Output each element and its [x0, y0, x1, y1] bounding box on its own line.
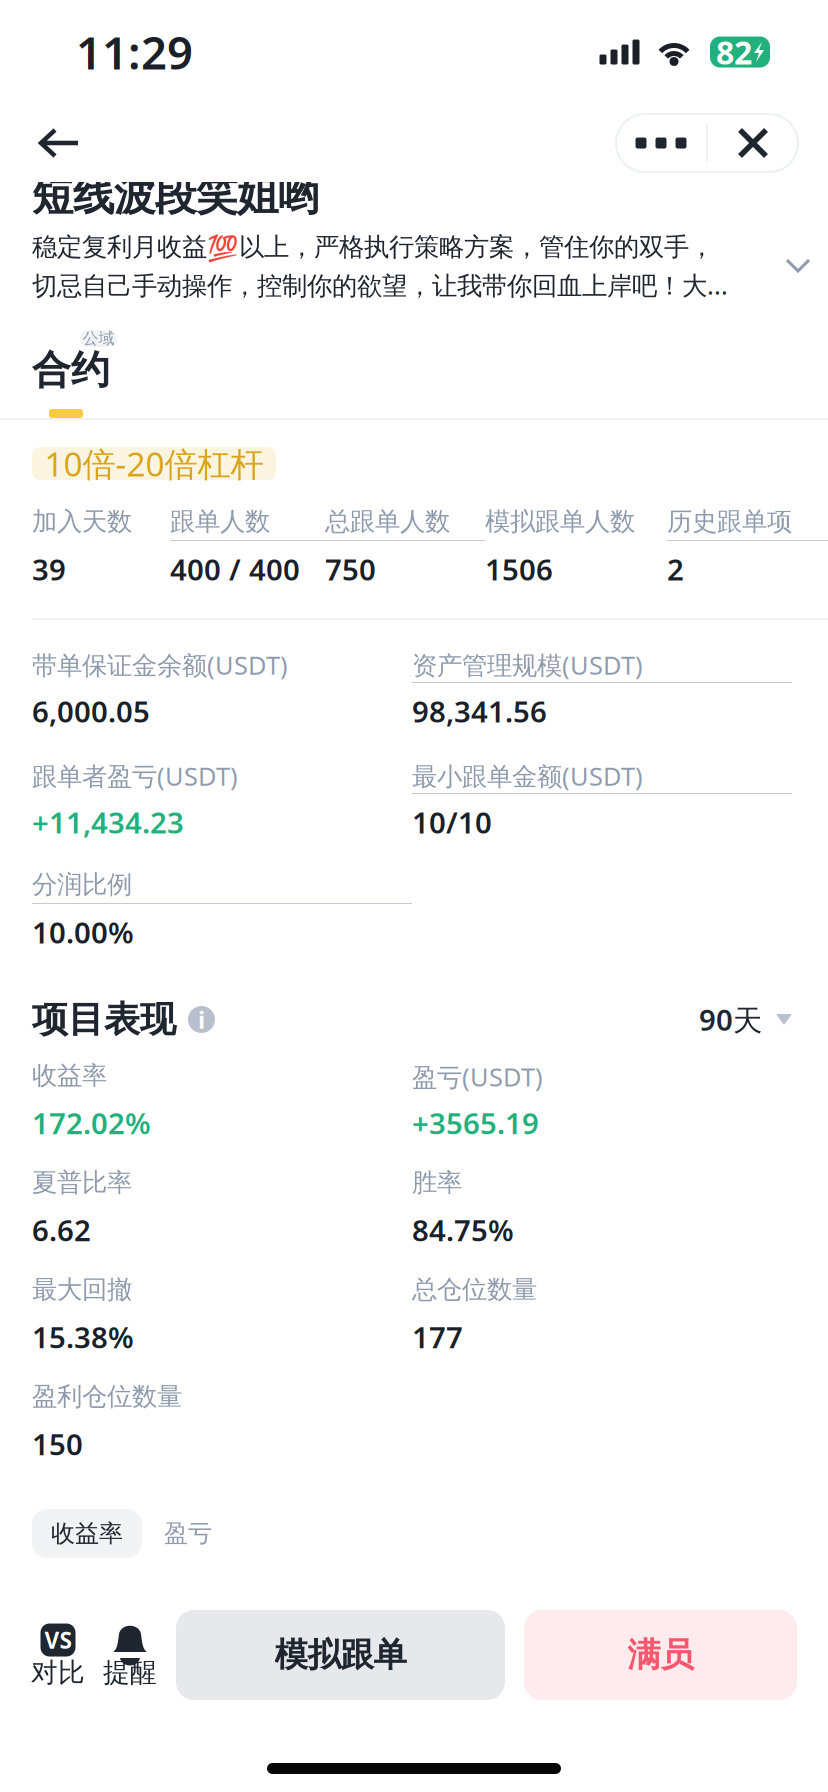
staticText: 1506 — [485, 549, 553, 588]
staticText: 夏普比率 — [32, 1167, 132, 1198]
staticText: 模拟跟单 — [274, 1634, 406, 1675]
staticText: 对比 — [31, 1656, 85, 1689]
button[interactable]: Back — [20, 104, 98, 182]
staticText: 盈利仓位数量 — [32, 1381, 182, 1412]
staticText: 6,000.05 — [32, 691, 150, 730]
button[interactable]: 收益率 — [32, 1509, 142, 1558]
button[interactable]: Expand description — [768, 228, 828, 304]
staticText: 750 — [325, 549, 376, 588]
staticText: 资产管理规模(USDT) — [412, 648, 643, 682]
staticText: 带单保证金余额(USDT) — [32, 648, 288, 682]
staticText: 82 — [716, 31, 752, 73]
staticText: 177 — [412, 1317, 463, 1356]
staticText: 98,341.56 — [412, 691, 547, 730]
staticText: 短线波段笑姐哟 — [32, 171, 319, 221]
button[interactable]: 盈亏 — [148, 1509, 228, 1558]
button[interactable]: More — [616, 114, 706, 172]
staticText: 400 / 400 — [170, 549, 300, 588]
button[interactable]: 90天 — [699, 994, 792, 1045]
staticText: +3565.19 — [412, 1103, 539, 1142]
staticText: 90天 — [699, 1000, 762, 1039]
staticText: 项目表现 — [32, 997, 176, 1042]
staticText: 盈亏 — [164, 1519, 212, 1548]
button[interactable]: 提醒 — [94, 1610, 166, 1700]
staticText: 最小跟单金额(USDT) — [412, 759, 643, 793]
staticText: 稳定复利月收益💯以上，严格执行策略方案，管住你的双手， — [32, 231, 714, 262]
staticText: 公域 — [82, 329, 114, 348]
staticText: i — [198, 1003, 205, 1035]
staticText: 合约 — [32, 346, 110, 394]
staticText: VS — [44, 1625, 71, 1655]
button[interactable]: 公域 — [0, 304, 828, 418]
staticText: 加入天数 — [32, 506, 132, 537]
staticText: 总仓位数量 — [412, 1274, 537, 1305]
staticText: 2 — [667, 549, 684, 588]
staticText: 模拟跟单人数 — [485, 506, 635, 537]
staticText: 收益率 — [51, 1519, 123, 1548]
staticText: 10.00% — [32, 912, 134, 951]
staticText: 胜率 — [412, 1167, 462, 1198]
staticText: 150 — [32, 1424, 83, 1463]
staticText: 10倍-20倍杠杆 — [44, 441, 263, 486]
staticText: 历史跟单项 — [667, 506, 792, 537]
staticText: 切忌自己手动操作，控制你的欲望，让我带你回血上岸吧！大... — [32, 268, 728, 302]
staticText: 84.75% — [412, 1210, 514, 1249]
staticText: 6.62 — [32, 1210, 91, 1249]
staticText: 跟单者盈亏(USDT) — [32, 759, 238, 793]
staticText: 提醒 — [103, 1656, 157, 1689]
staticText: 满员 — [627, 1634, 693, 1675]
button[interactable]: 模拟跟单 — [176, 1610, 505, 1700]
button[interactable]: 满员 — [524, 1610, 797, 1700]
staticText: 盈亏(USDT) — [412, 1060, 543, 1094]
staticText: +11,434.23 — [32, 802, 184, 841]
staticText: 172.02% — [32, 1103, 151, 1142]
staticText: 11:29 — [76, 22, 193, 82]
button[interactable]: Close — [708, 114, 798, 172]
staticText: 39 — [32, 549, 66, 588]
staticText: 10/10 — [412, 802, 492, 841]
staticText: 15.38% — [32, 1317, 134, 1356]
staticText: 跟单人数 — [170, 506, 270, 537]
staticText: 最大回撤 — [32, 1274, 132, 1305]
button[interactable]: VS — [22, 1610, 94, 1700]
staticText: 总跟单人数 — [325, 506, 450, 537]
staticText: 收益率 — [32, 1060, 107, 1091]
staticText: 分润比例 — [32, 869, 132, 900]
